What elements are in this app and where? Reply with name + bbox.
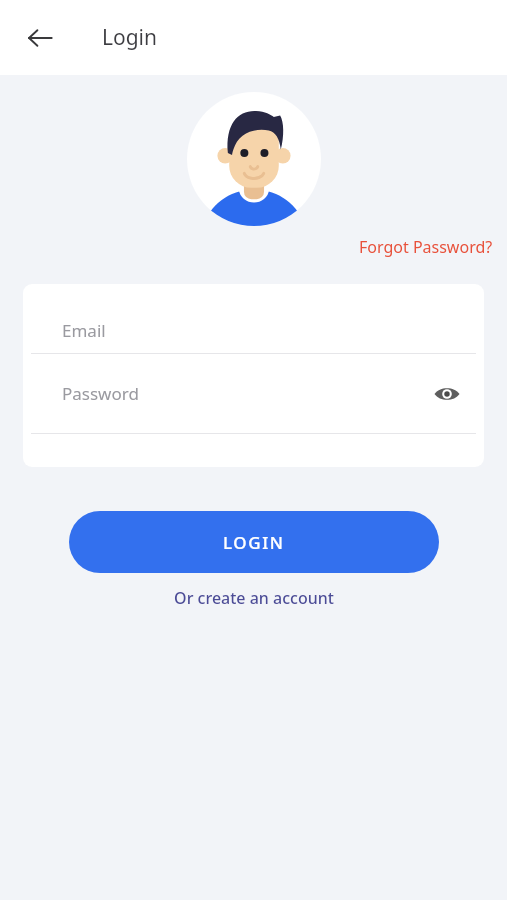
staticText: Login: [102, 23, 158, 52]
staticText: LOGIN: [223, 531, 285, 554]
button[interactable]: Email: [23, 308, 484, 353]
button[interactable]: Back: [14, 12, 66, 64]
staticText: Email: [62, 319, 106, 342]
button[interactable]: Or create an account: [162, 583, 346, 613]
staticText: Password: [62, 382, 139, 405]
button[interactable]: Password: [23, 354, 484, 433]
button[interactable]: Show password: [427, 374, 467, 414]
button[interactable]: Forgot Password?: [345, 232, 507, 262]
staticText: Forgot Password?: [359, 236, 493, 258]
button[interactable]: LOGIN: [69, 511, 439, 573]
staticText: Or create an account: [174, 587, 334, 609]
